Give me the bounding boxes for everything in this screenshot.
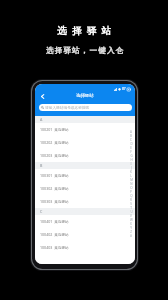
staticText: F bbox=[130, 150, 132, 154]
staticText: V bbox=[130, 214, 132, 218]
staticText: A bbox=[130, 130, 132, 134]
staticText: M bbox=[130, 178, 133, 182]
staticText: 选择驿站，一键入仓 bbox=[46, 46, 125, 55]
staticText: T bbox=[130, 206, 132, 210]
staticText: J bbox=[131, 166, 132, 170]
button[interactable]: 请输入驿站编号或名称搜索 bbox=[39, 104, 132, 111]
staticText: Y bbox=[130, 226, 132, 230]
button[interactable]: 100203 菜鸟驿站 bbox=[35, 149, 135, 162]
staticText: G bbox=[130, 154, 133, 158]
staticText: 100201 菜鸟驿站 bbox=[40, 127, 69, 132]
button[interactable]: 100202 菜鸟驿站 bbox=[35, 136, 135, 149]
staticText: A bbox=[40, 117, 43, 122]
staticText: 100202 菜鸟驿站 bbox=[40, 140, 69, 145]
staticText: O bbox=[130, 186, 133, 190]
staticText: B bbox=[130, 134, 132, 138]
button[interactable]: 100302 菜鸟驿站 bbox=[35, 182, 135, 195]
staticText: H bbox=[130, 158, 133, 162]
button[interactable]: 100201 菜鸟驿站 bbox=[35, 123, 135, 136]
staticText: U bbox=[130, 210, 133, 214]
staticText: 选择驿站 bbox=[57, 25, 117, 37]
staticText: W bbox=[130, 218, 133, 222]
staticText: 请输入驿站编号或名称搜索 bbox=[45, 105, 90, 110]
staticText: 100301 菜鸟驿站 bbox=[40, 173, 69, 178]
staticText: K bbox=[130, 170, 132, 174]
staticText: # bbox=[130, 234, 132, 238]
staticText: L bbox=[130, 174, 132, 178]
staticText: X bbox=[130, 222, 132, 226]
button[interactable]: 100301 菜鸟驿站 bbox=[35, 169, 135, 182]
button[interactable]: 100402 菜鸟驿站 bbox=[35, 228, 135, 241]
staticText: 100403 菜鸟驿站 bbox=[40, 245, 69, 250]
button[interactable]: 100401 菜鸟驿站 bbox=[35, 215, 135, 228]
staticText: 100402 菜鸟驿站 bbox=[40, 232, 69, 237]
staticText: C bbox=[130, 138, 132, 142]
button[interactable]: 100303 菜鸟驿站 bbox=[35, 195, 135, 208]
staticText: Z bbox=[130, 230, 132, 234]
staticText: P bbox=[130, 190, 132, 194]
staticText: C bbox=[40, 209, 43, 214]
staticText: N bbox=[130, 182, 133, 186]
staticText: E bbox=[130, 146, 132, 150]
button[interactable]: 100403 菜鸟驿站 bbox=[35, 241, 135, 254]
staticText: 100401 菜鸟驿站 bbox=[40, 219, 69, 224]
staticText: 选择驿站 bbox=[76, 93, 94, 99]
button[interactable]: Back bbox=[37, 91, 47, 101]
staticText: D bbox=[130, 142, 133, 146]
staticText: 100303 菜鸟驿站 bbox=[40, 199, 69, 204]
staticText: S bbox=[130, 202, 132, 206]
staticText: R bbox=[130, 198, 132, 202]
staticText: Q bbox=[130, 194, 133, 198]
staticText: 100203 菜鸟驿站 bbox=[40, 153, 69, 158]
staticText: 87 bbox=[122, 87, 126, 91]
staticText: 100302 菜鸟驿站 bbox=[40, 186, 69, 191]
staticText: I bbox=[130, 162, 132, 166]
staticText: B bbox=[40, 163, 43, 168]
